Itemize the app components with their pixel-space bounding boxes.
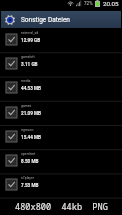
button[interactable]: n7player xyxy=(0,173,122,197)
staticText: games xyxy=(21,104,32,108)
button[interactable]: openfeint xyxy=(0,149,122,173)
button[interactable]: media xyxy=(0,76,122,100)
staticText: 15.44 MB xyxy=(21,135,41,140)
staticText: openfeint xyxy=(21,152,36,156)
staticText: ngmoco xyxy=(21,128,34,132)
staticText: 20.05 xyxy=(103,0,119,7)
staticText: gameloft xyxy=(21,55,35,59)
staticText: 480x800 44kb PNG xyxy=(15,201,108,213)
staticText: 72% xyxy=(84,1,93,6)
button[interactable]: Settings xyxy=(1,11,121,28)
staticText: 44.53 MB xyxy=(21,86,41,91)
staticText: 7.53 MB xyxy=(21,183,39,188)
staticText: 8.50 MB xyxy=(21,159,39,164)
button[interactable]: gameloft xyxy=(0,52,122,76)
button[interactable]: games xyxy=(0,101,122,125)
other: Settings xyxy=(5,15,15,25)
button[interactable]: external_sd xyxy=(0,28,122,52)
staticText: 12.99 GB xyxy=(21,38,41,43)
staticText: 21.09 MB xyxy=(21,111,41,116)
staticText: n7player xyxy=(21,176,34,180)
button[interactable]: ngmoco xyxy=(0,125,122,149)
staticText: Sonstige Dateien xyxy=(21,16,70,24)
staticText: media xyxy=(21,79,31,83)
staticText: external_sd xyxy=(21,31,39,35)
staticText: 3.11 GB xyxy=(21,62,38,67)
